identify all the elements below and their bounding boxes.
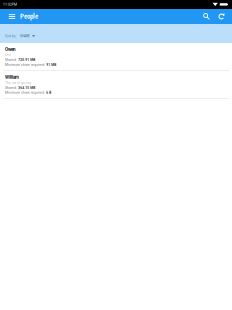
staticText: 720.91 MB <box>18 58 35 62</box>
button[interactable]: Search <box>199 9 214 24</box>
staticText: William <box>5 75 19 80</box>
button[interactable]: Sort by: <box>0 24 232 43</box>
staticText: 6 B <box>46 91 51 95</box>
staticText: People <box>20 12 38 20</box>
staticText: 91 MB <box>46 63 56 67</box>
staticText: 11:02PM <box>3 2 17 6</box>
button[interactable]: William <box>0 71 232 98</box>
staticText: 364.15 MB <box>18 86 35 90</box>
staticText: Sort by: <box>5 34 17 38</box>
staticText: SHARE <box>20 34 30 38</box>
button[interactable]: Owen <box>0 43 232 70</box>
staticText: Minimum share required: <box>5 91 45 95</box>
button[interactable]: Refresh <box>214 9 229 24</box>
staticText: Leo <box>5 53 11 57</box>
staticText: Shared: <box>5 86 17 90</box>
staticText: Owen <box>5 47 16 52</box>
staticText: The art of giving <box>5 81 31 85</box>
button[interactable]: Menu <box>4 9 20 24</box>
staticText: Shared: <box>5 58 17 62</box>
staticText: Minimum share required: <box>5 63 45 67</box>
